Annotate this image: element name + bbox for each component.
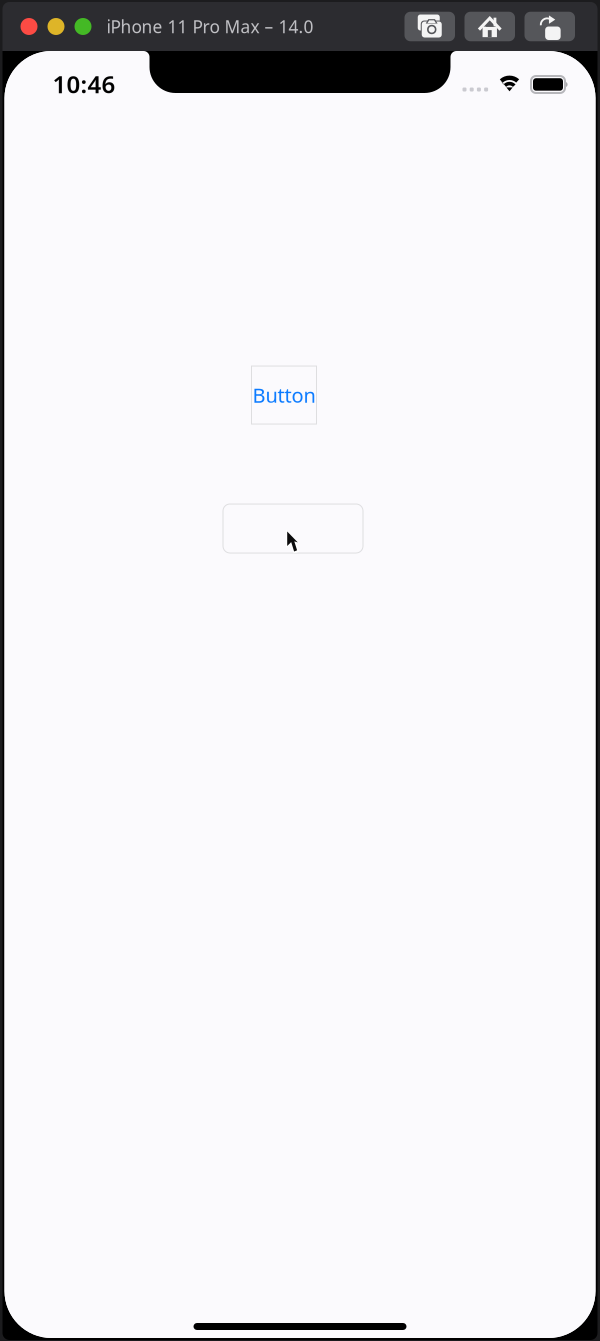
button[interactable]: Screenshot <box>404 12 455 41</box>
staticText: 10:46 <box>52 68 115 100</box>
button[interactable]: Zoom <box>74 18 91 35</box>
button[interactable]: Rotate <box>524 12 575 41</box>
staticText: iPhone 11 Pro Max – 14.0 <box>106 15 313 38</box>
button[interactable]: Home <box>464 12 515 41</box>
button[interactable]: Close <box>20 18 37 35</box>
button[interactable]: Button <box>251 366 316 424</box>
staticText: Button <box>252 382 315 408</box>
button[interactable]: Empty control <box>223 504 363 553</box>
button[interactable]: Minimise <box>47 18 64 35</box>
